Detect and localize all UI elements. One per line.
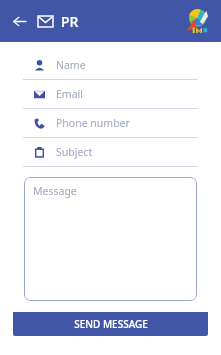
staticText: Name xyxy=(56,58,86,72)
staticText: Email xyxy=(56,87,83,101)
button[interactable]: Phone number xyxy=(13,109,208,137)
staticText: Phone number xyxy=(56,116,130,130)
staticText: PR xyxy=(61,12,79,31)
button[interactable]: Name xyxy=(13,51,208,79)
button[interactable]: Message xyxy=(24,177,197,301)
staticText: SEND MESSAGE xyxy=(74,317,148,331)
button[interactable]: SEND MESSAGE xyxy=(13,312,208,336)
staticText: Subject xyxy=(56,145,93,159)
button[interactable]: Back xyxy=(9,11,29,31)
button[interactable]: Subject xyxy=(13,138,208,166)
staticText: Message xyxy=(33,184,77,198)
button[interactable]: Email xyxy=(13,80,208,108)
button[interactable]: App logo xyxy=(182,5,214,37)
